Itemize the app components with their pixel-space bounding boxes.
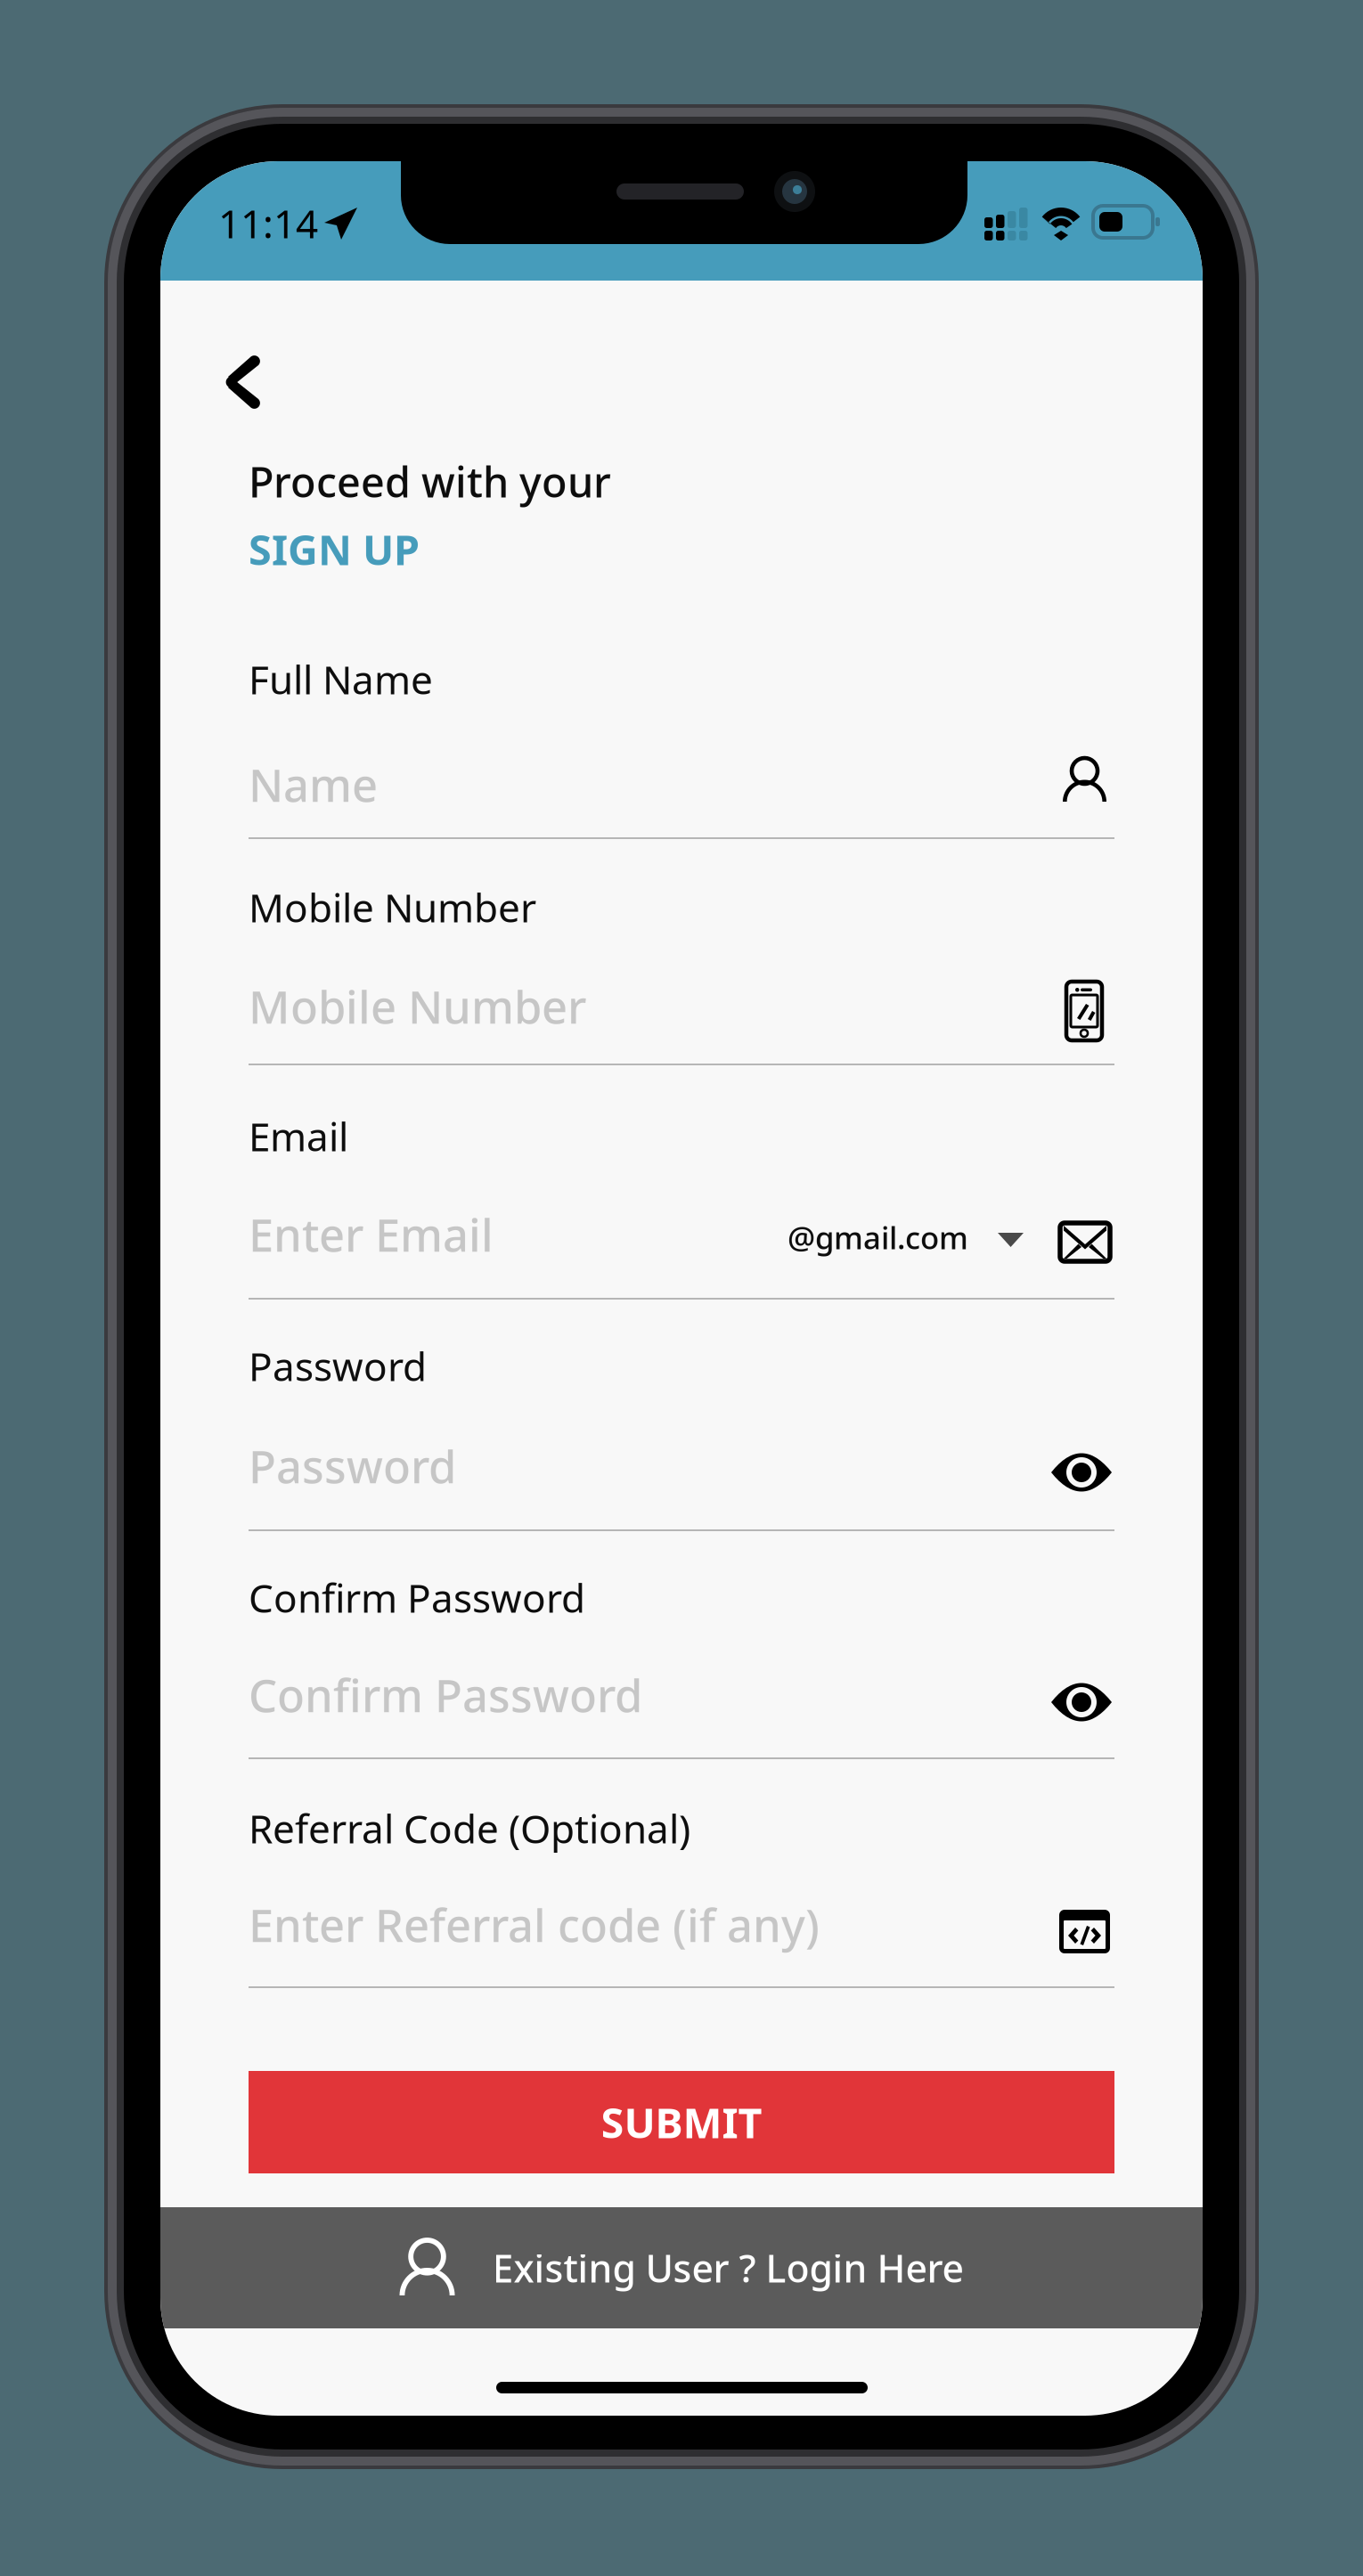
button[interactable]: Email (0, 0, 1363, 2576)
staticText: Full Name (249, 653, 433, 705)
button[interactable]: Email domain: @gmail.com (0, 0, 1363, 2576)
button[interactable]: Confirm Password (0, 0, 1363, 2576)
button[interactable]: Show password (0, 0, 1363, 2576)
staticText: Enter Referral code (if any) (249, 1895, 820, 1955)
button[interactable]: Enter Email (0, 0, 1363, 2576)
staticText: Email (249, 1110, 348, 1162)
staticText: Password (249, 1436, 456, 1496)
staticText: Enter Email (249, 1204, 494, 1264)
button[interactable]: Password (0, 0, 1363, 2576)
button[interactable]: Mobile number (0, 0, 1363, 2576)
button[interactable]: Mobile Number (0, 0, 1363, 2576)
staticText: SUBMIT (601, 2095, 762, 2150)
staticText: SIGN UP (249, 521, 420, 577)
staticText: Referral Code (Optional) (249, 1802, 690, 1854)
button[interactable]: Show confirm password (0, 0, 1363, 2576)
staticText: Existing User ? Login Here (492, 2243, 963, 2293)
button[interactable]: Back (0, 0, 1363, 2576)
staticText: 11:14 (218, 197, 318, 249)
button[interactable]: Enter Referral code (if any) (0, 0, 1363, 2576)
button[interactable]: Name (0, 0, 1363, 2576)
button[interactable]: SUBMIT (0, 0, 1363, 2576)
button[interactable]: Name (0, 0, 1363, 2576)
staticText: Mobile Number (249, 976, 586, 1036)
button[interactable]: Existing User ? Login Here (0, 0, 1363, 2576)
staticText: Confirm Password (249, 1665, 642, 1725)
button[interactable]: Referral code (0, 0, 1363, 2576)
staticText: Proceed with your (249, 454, 611, 509)
staticText: Confirm Password (249, 1571, 585, 1623)
staticText: Mobile Number (249, 881, 536, 933)
staticText: Password (249, 1340, 427, 1392)
staticText: Name (249, 754, 378, 814)
staticText: @gmail.com (788, 1217, 968, 1258)
